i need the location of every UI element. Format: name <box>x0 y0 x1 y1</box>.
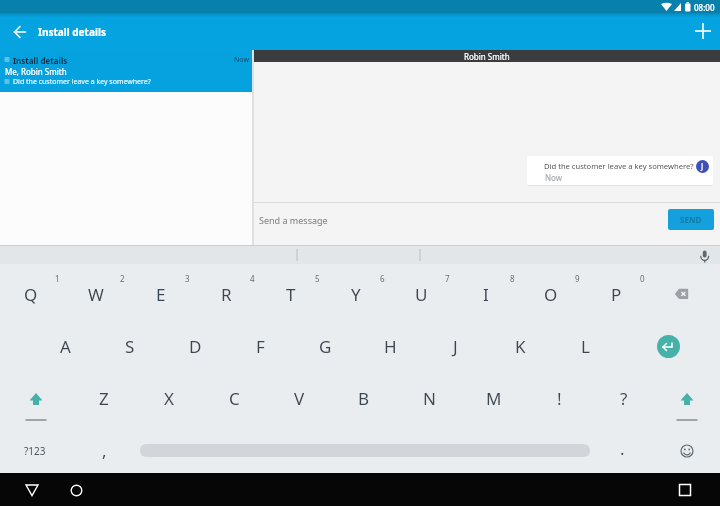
button[interactable]: S <box>110 331 150 361</box>
button[interactable]: ? <box>604 383 644 413</box>
staticText: V <box>294 387 305 410</box>
staticText: A <box>60 335 71 358</box>
staticText: 7 <box>445 273 450 284</box>
staticText: M <box>486 387 502 410</box>
button[interactable]: Q <box>11 279 51 309</box>
staticText: 3 <box>185 273 190 284</box>
staticText: Did the customer leave a key somewhere? <box>13 77 151 87</box>
staticText: W <box>88 283 104 306</box>
staticText: 4 <box>250 273 255 284</box>
staticText: E <box>156 283 166 306</box>
staticText: ! <box>557 387 562 410</box>
staticText: Me, Robin Smith <box>5 66 67 77</box>
button[interactable]: C <box>214 383 254 413</box>
button[interactable]: A <box>45 331 85 361</box>
staticText: 6 <box>380 273 385 284</box>
button[interactable]: ! <box>539 383 579 413</box>
staticText: K <box>515 335 526 358</box>
button[interactable] <box>23 391 49 423</box>
staticText: L <box>581 335 590 358</box>
staticText: 8 <box>510 273 515 284</box>
staticText: , <box>102 439 107 462</box>
button[interactable]: ?123 <box>15 441 55 461</box>
staticText: O <box>544 283 558 306</box>
button[interactable]: H <box>370 331 410 361</box>
staticText: Did the customer leave a key somewhere? <box>544 161 694 171</box>
staticText: Now <box>234 55 249 65</box>
staticText: T <box>286 283 296 306</box>
staticText: H <box>384 335 397 358</box>
staticText: N <box>423 387 436 410</box>
staticText: R <box>221 283 232 306</box>
staticText: G <box>319 335 332 358</box>
staticText: Z <box>99 387 109 410</box>
button[interactable]: R <box>206 279 246 309</box>
button[interactable] <box>0 50 253 92</box>
button[interactable]: V <box>279 383 319 413</box>
button[interactable]: W <box>76 279 116 309</box>
staticText: I <box>483 283 489 306</box>
button[interactable] <box>254 203 654 243</box>
button[interactable] <box>6 18 34 46</box>
button[interactable]: F <box>240 331 280 361</box>
staticText: Now <box>545 172 563 183</box>
staticText: ?123 <box>24 444 46 458</box>
staticText: X <box>164 387 174 410</box>
staticText: SEND <box>680 214 702 225</box>
button[interactable] <box>678 483 692 497</box>
button[interactable]: , <box>94 437 114 463</box>
staticText: 2 <box>120 273 125 284</box>
staticText: U <box>415 283 428 306</box>
staticText: 5 <box>315 273 320 284</box>
staticText: Robin Smith <box>464 51 510 62</box>
button[interactable] <box>0 13 720 50</box>
button[interactable]: . <box>612 435 632 461</box>
button[interactable] <box>70 484 83 497</box>
staticText: Y <box>351 283 361 306</box>
staticText: 08:00 <box>694 2 715 13</box>
button[interactable]: D <box>175 331 215 361</box>
button[interactable]: N <box>409 383 449 413</box>
staticText: P <box>611 283 622 306</box>
button[interactable]: SEND <box>668 209 714 230</box>
staticText: J <box>701 161 704 172</box>
button[interactable] <box>694 246 716 264</box>
button[interactable] <box>657 335 680 358</box>
button[interactable] <box>20 482 44 499</box>
button[interactable] <box>690 18 716 44</box>
button[interactable]: U <box>401 279 441 309</box>
staticText: 0 <box>640 273 645 284</box>
button[interactable]: G <box>305 331 345 361</box>
staticText: F <box>256 335 265 358</box>
button[interactable]: P <box>596 279 636 309</box>
button[interactable]: M <box>474 383 514 413</box>
button[interactable]: L <box>565 331 605 361</box>
button[interactable]: J <box>435 331 475 361</box>
staticText: . <box>620 437 625 460</box>
button[interactable] <box>680 444 694 458</box>
button[interactable]: T <box>271 279 311 309</box>
staticText: Send a message <box>259 214 328 226</box>
staticText: B <box>358 387 370 410</box>
button[interactable]: B <box>344 383 384 413</box>
staticText: Q <box>24 283 38 306</box>
button[interactable]: E <box>141 279 181 309</box>
button[interactable]: X <box>149 383 189 413</box>
button[interactable]: Z <box>84 383 124 413</box>
staticText: 9 <box>575 273 580 284</box>
staticText: D <box>189 335 202 358</box>
staticText: ? <box>620 387 628 410</box>
staticText: 1 <box>55 273 60 284</box>
staticText: Install details <box>38 25 106 39</box>
staticText: S <box>125 335 135 358</box>
staticText: J <box>453 335 458 358</box>
button[interactable]: I <box>466 279 506 309</box>
staticText: Install details <box>13 55 68 66</box>
button[interactable]: O <box>531 279 571 309</box>
button[interactable]: Y <box>336 279 376 309</box>
button[interactable] <box>674 288 691 301</box>
button[interactable]: K <box>500 331 540 361</box>
button[interactable] <box>674 391 700 423</box>
staticText: C <box>229 387 240 410</box>
